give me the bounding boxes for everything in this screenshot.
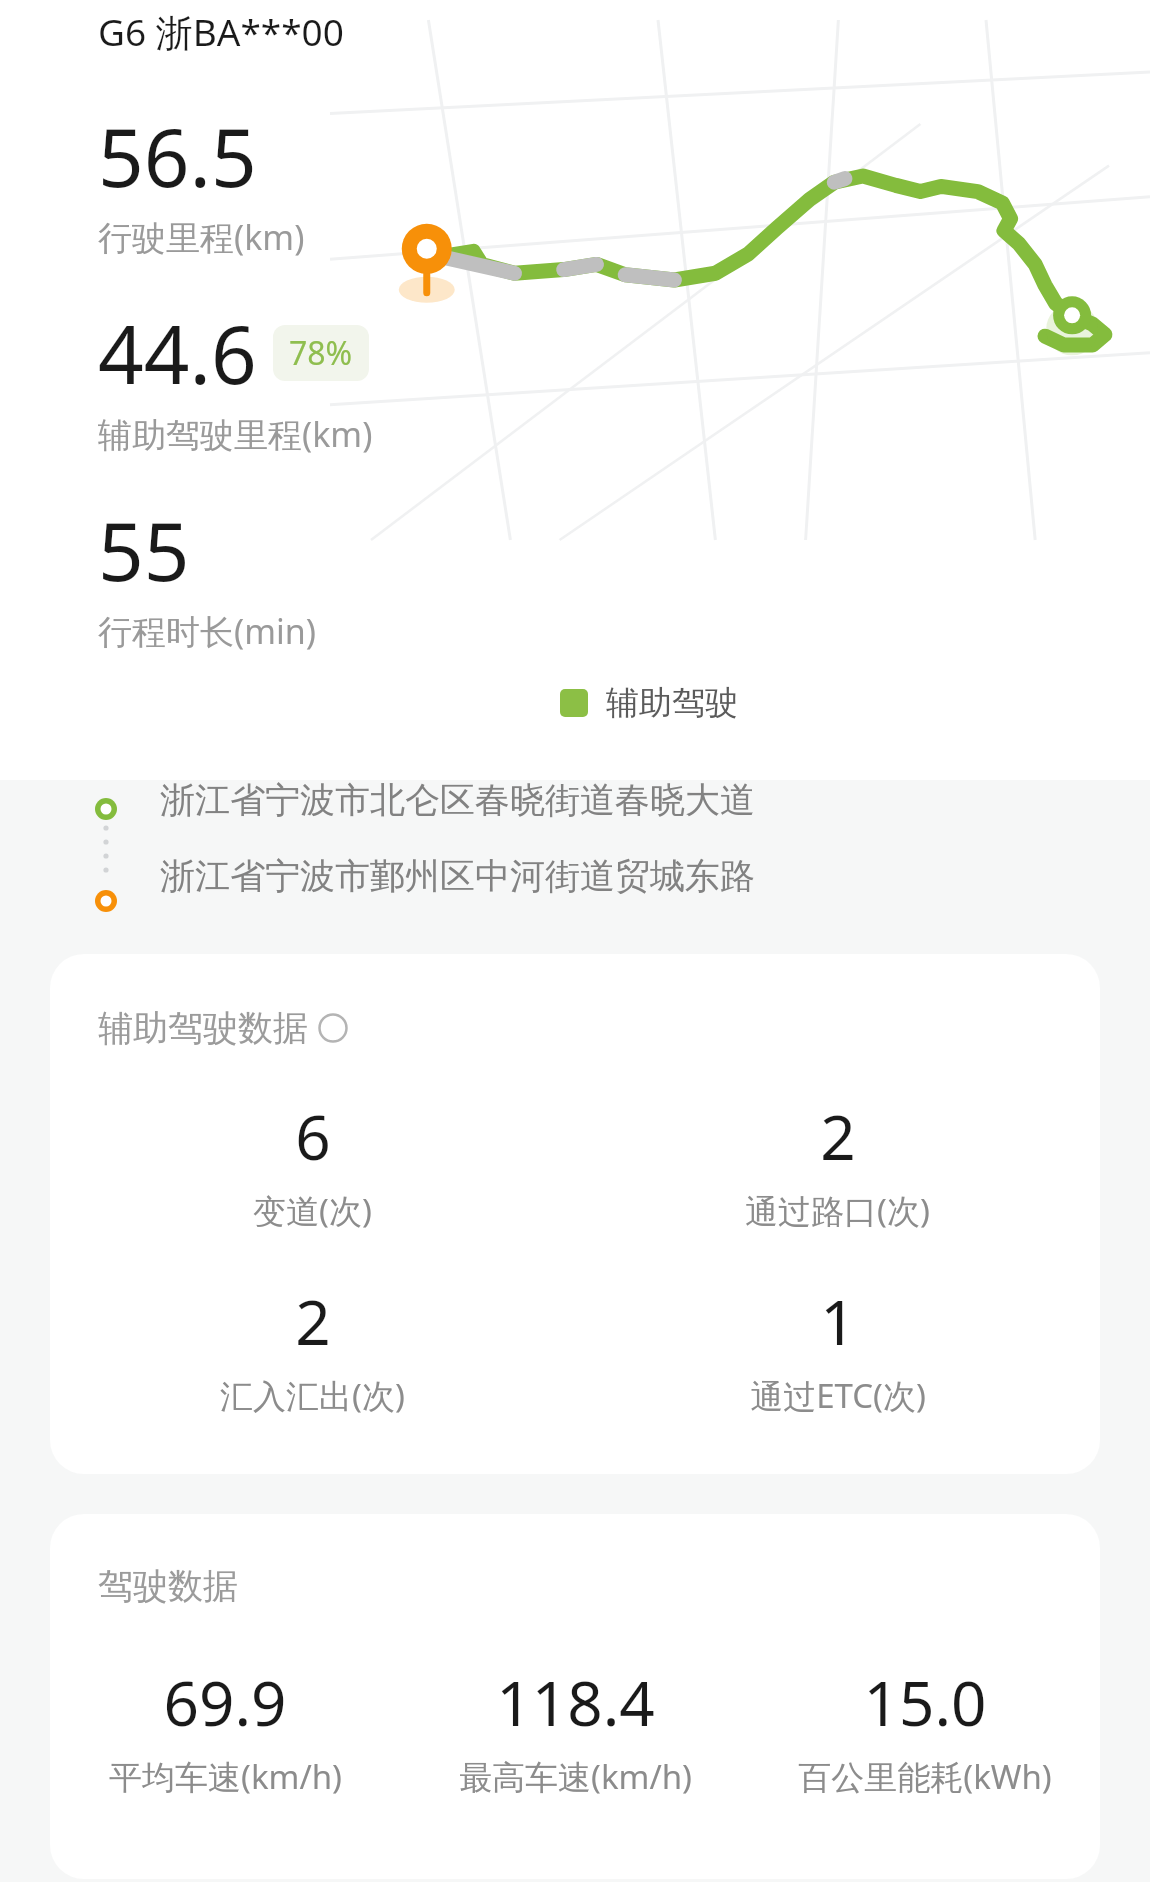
staticText: 行驶里程(km) xyxy=(98,214,305,260)
button[interactable]: 118.4 xyxy=(400,1660,750,1799)
staticText: 最高车速(km/h) xyxy=(459,1754,692,1799)
button[interactable]: 辅助驾驶数据说明 xyxy=(98,1006,348,1050)
staticText: 78% xyxy=(289,331,353,375)
staticText: 辅助驾驶里程(km) xyxy=(98,411,373,457)
staticText: 通过ETC(次) xyxy=(750,1373,926,1418)
staticText: 行程时长(min) xyxy=(98,608,316,654)
staticText: 2 xyxy=(295,1279,331,1363)
button[interactable]: 15.0 xyxy=(750,1660,1100,1799)
staticText: 浙江省宁波市鄞州区中河街道贸城东路 xyxy=(160,854,755,898)
staticText: 44.6 xyxy=(98,298,257,407)
staticText: 辅助驾驶数据 xyxy=(98,1006,308,1050)
staticText: 6 xyxy=(295,1094,331,1178)
staticText: 辅助驾驶 xyxy=(606,682,738,724)
button[interactable]: 2 xyxy=(575,1094,1100,1233)
staticText: 变道(次) xyxy=(253,1188,372,1233)
staticText: 55 xyxy=(98,495,190,604)
staticText: G6 浙BA***00 xyxy=(98,6,344,57)
staticText: 2 xyxy=(820,1094,856,1178)
button[interactable]: 6 xyxy=(50,1094,575,1233)
staticText: 汇入汇出(次) xyxy=(220,1373,405,1418)
staticText: 驾驶数据 xyxy=(98,1564,238,1608)
staticText: 浙江省宁波市北仑区春晓街道春晓大道 xyxy=(160,778,755,822)
staticText: 69.9 xyxy=(163,1660,287,1744)
staticText: 百公里能耗(kWh) xyxy=(798,1754,1052,1799)
staticText: 通过路口(次) xyxy=(745,1188,930,1233)
button[interactable]: 69.9 xyxy=(50,1660,400,1799)
staticText: 15.0 xyxy=(863,1660,987,1744)
staticText: 56.5 xyxy=(98,101,257,210)
button[interactable]: 1 xyxy=(575,1279,1100,1418)
staticText: 平均车速(km/h) xyxy=(109,1754,342,1799)
button[interactable]: 2 xyxy=(50,1279,575,1418)
staticText: 118.4 xyxy=(496,1660,655,1744)
staticText: 1 xyxy=(820,1279,856,1363)
